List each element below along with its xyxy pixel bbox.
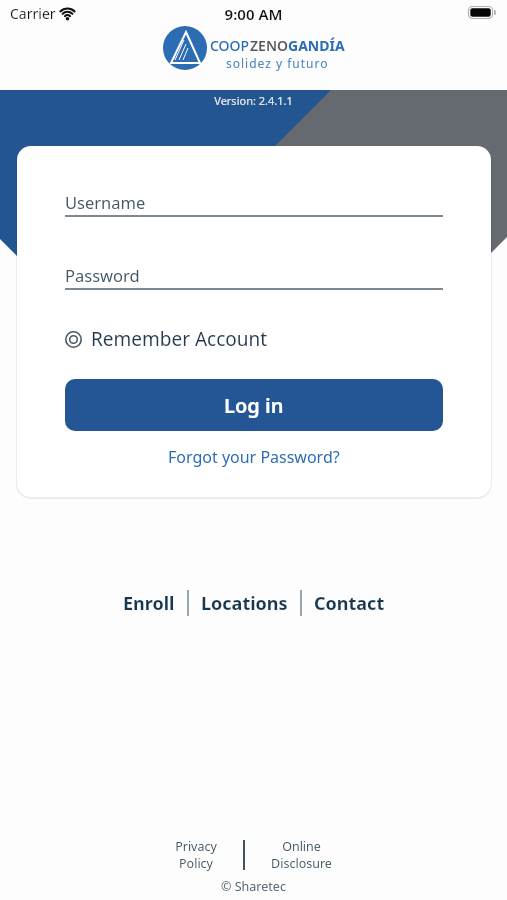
staticText: GANDÍA [288, 36, 345, 55]
staticText: Username [65, 191, 146, 213]
staticText: COOP [210, 36, 250, 55]
button[interactable]: Forgot your Password? [17, 446, 491, 468]
staticText: Disclosure [271, 855, 332, 872]
button[interactable]: Contact [314, 591, 385, 616]
button[interactable]: Log in [65, 379, 443, 431]
staticText: Password [65, 264, 140, 286]
staticText: Privacy [175, 838, 217, 855]
staticText: 9:00 AM [0, 4, 507, 24]
button[interactable]: Privacy [175, 838, 217, 872]
staticText: Remember Account [91, 326, 268, 352]
staticText: Online [282, 838, 321, 855]
button[interactable]: Enroll [123, 591, 175, 616]
button[interactable]: Online [271, 838, 332, 872]
staticText: Policy [179, 855, 213, 872]
staticText: Carrier [10, 4, 56, 23]
button[interactable]: Remember Account [65, 326, 268, 352]
staticText: © Sharetec [0, 878, 507, 895]
button[interactable]: Locations [201, 591, 288, 616]
staticText: Version: 2.4.1.1 [0, 93, 507, 108]
staticText: Forgot your Password? [168, 446, 340, 468]
staticText: ZENO [250, 36, 288, 55]
staticText: solidez y futuro [226, 55, 329, 71]
staticText: Log in [224, 392, 284, 419]
